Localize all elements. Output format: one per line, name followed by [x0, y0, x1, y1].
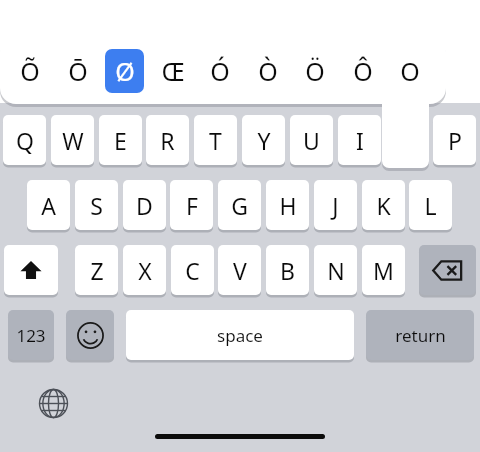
staticText: H [279, 190, 297, 221]
button[interactable]: R [146, 115, 189, 165]
button[interactable]: U [290, 115, 333, 165]
staticText: B [280, 255, 295, 286]
button[interactable]: Ō [58, 49, 97, 93]
button[interactable]: Õ [10, 49, 49, 93]
staticText: Õ [20, 54, 40, 88]
staticText: Ö [305, 54, 325, 88]
button[interactable]: F [170, 180, 213, 230]
button[interactable]: H [266, 180, 309, 230]
staticText: I [356, 125, 364, 156]
button[interactable]: G [218, 180, 261, 230]
button[interactable]: K [362, 180, 405, 230]
staticText: 123 [16, 324, 46, 347]
button[interactable]: I [338, 115, 381, 165]
staticText: P [448, 125, 462, 156]
button[interactable]: T [194, 115, 237, 165]
staticText: C [185, 255, 200, 286]
staticText: F [186, 190, 198, 221]
staticText: Œ [161, 54, 185, 88]
button[interactable]: Ø [105, 49, 144, 93]
button[interactable]: M [362, 245, 405, 295]
button[interactable]: Y [242, 115, 285, 165]
staticText: V [233, 255, 247, 286]
staticText: T [209, 125, 222, 156]
staticText: A [41, 190, 56, 221]
staticText: S [90, 190, 103, 221]
staticText: R [160, 125, 175, 156]
button[interactable]: D [123, 180, 166, 230]
button[interactable]: P [433, 115, 476, 165]
button[interactable]: Ö [295, 49, 334, 93]
button[interactable]: Z [75, 245, 118, 295]
button[interactable]: Ò [248, 49, 287, 93]
staticText: return [395, 324, 446, 347]
staticText: N [327, 255, 345, 286]
staticText: X [138, 255, 152, 286]
staticText: Ō [68, 54, 88, 88]
button[interactable]: B [266, 245, 309, 295]
button[interactable]: return [366, 310, 474, 360]
staticText: Z [90, 255, 104, 286]
button[interactable]: 123 [8, 310, 54, 360]
staticText: Ò [258, 54, 278, 88]
staticText: J [332, 190, 339, 221]
button[interactable]: Q [3, 115, 46, 165]
button[interactable]: Shift [4, 245, 58, 295]
button[interactable]: space [126, 310, 354, 360]
button[interactable]: V [218, 245, 261, 295]
staticText: O [400, 54, 420, 88]
staticText: W [62, 125, 84, 156]
button[interactable]: O [390, 49, 429, 93]
button[interactable]: Backspace [419, 245, 476, 295]
staticText: E [114, 125, 127, 156]
button[interactable]: E [99, 115, 142, 165]
staticText: Y [257, 125, 271, 156]
button[interactable]: A [27, 180, 70, 230]
button[interactable]: Emoji [66, 310, 114, 360]
staticText: U [303, 125, 320, 156]
staticText: Ó [210, 54, 230, 88]
button[interactable]: Change keyboard [30, 380, 76, 426]
staticText: Ô [353, 54, 373, 88]
button[interactable]: J [314, 180, 357, 230]
button[interactable]: W [51, 115, 94, 165]
button[interactable]: Ô [343, 49, 382, 93]
button[interactable]: N [314, 245, 357, 295]
button[interactable]: Ó [200, 49, 239, 93]
staticText: Ø [115, 54, 135, 88]
button[interactable]: X [123, 245, 166, 295]
staticText: G [231, 190, 248, 221]
button[interactable]: C [171, 245, 214, 295]
button[interactable]: Œ [153, 49, 192, 93]
staticText: Q [16, 125, 34, 156]
button[interactable]: L [409, 180, 452, 230]
staticText: M [373, 255, 394, 286]
staticText: K [376, 190, 391, 221]
staticText: L [424, 190, 437, 221]
button[interactable]: S [75, 180, 118, 230]
staticText: space [217, 324, 263, 347]
staticText: D [136, 190, 153, 221]
